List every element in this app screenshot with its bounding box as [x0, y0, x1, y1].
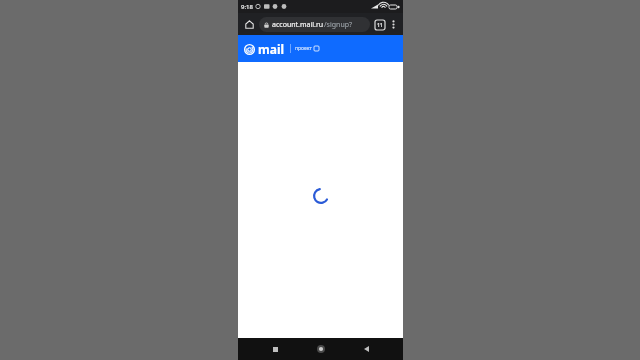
button[interactable]: проект [295, 45, 319, 52]
button[interactable]: account.mail.ru [259, 17, 370, 32]
staticText: account.mail.ru [272, 20, 324, 30]
staticText: mail [258, 41, 285, 57]
button[interactable]: Recent apps [266, 340, 284, 358]
button[interactable]: Back [357, 340, 375, 358]
staticText: /signup?from [324, 20, 365, 30]
button[interactable]: mail [244, 41, 285, 57]
button[interactable]: More options [387, 18, 400, 31]
staticText: 9:18 [241, 3, 253, 11]
staticText: 11 [377, 22, 383, 29]
button[interactable]: Home [241, 16, 257, 32]
button[interactable]: Tabs [372, 17, 387, 32]
staticText: проект [295, 45, 312, 52]
button[interactable]: Home [312, 340, 330, 358]
